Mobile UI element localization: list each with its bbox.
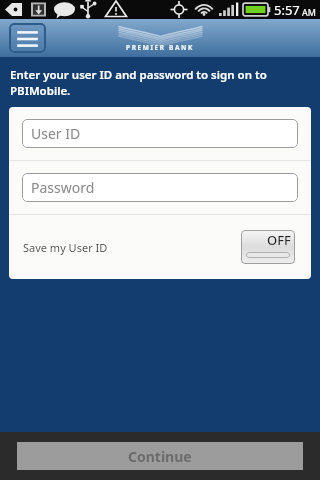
button[interactable]: Save my User ID toggle, off [241, 230, 295, 264]
staticText: Save my User ID [23, 240, 108, 255]
staticText: AM [302, 6, 316, 18]
staticText: OFF [267, 231, 291, 249]
staticText: Continue [128, 447, 192, 466]
staticText: Enter your user ID and password to sign … [10, 67, 267, 98]
staticText: User ID [31, 124, 81, 143]
staticText: PREMIER BANK [126, 43, 194, 52]
button[interactable]: Menu [9, 23, 46, 53]
staticText: Password [31, 178, 95, 197]
button[interactable]: Continue [17, 442, 303, 470]
button[interactable]: Password [9, 161, 311, 214]
staticText: 5:57 [274, 1, 300, 19]
button[interactable]: User ID [9, 107, 311, 160]
